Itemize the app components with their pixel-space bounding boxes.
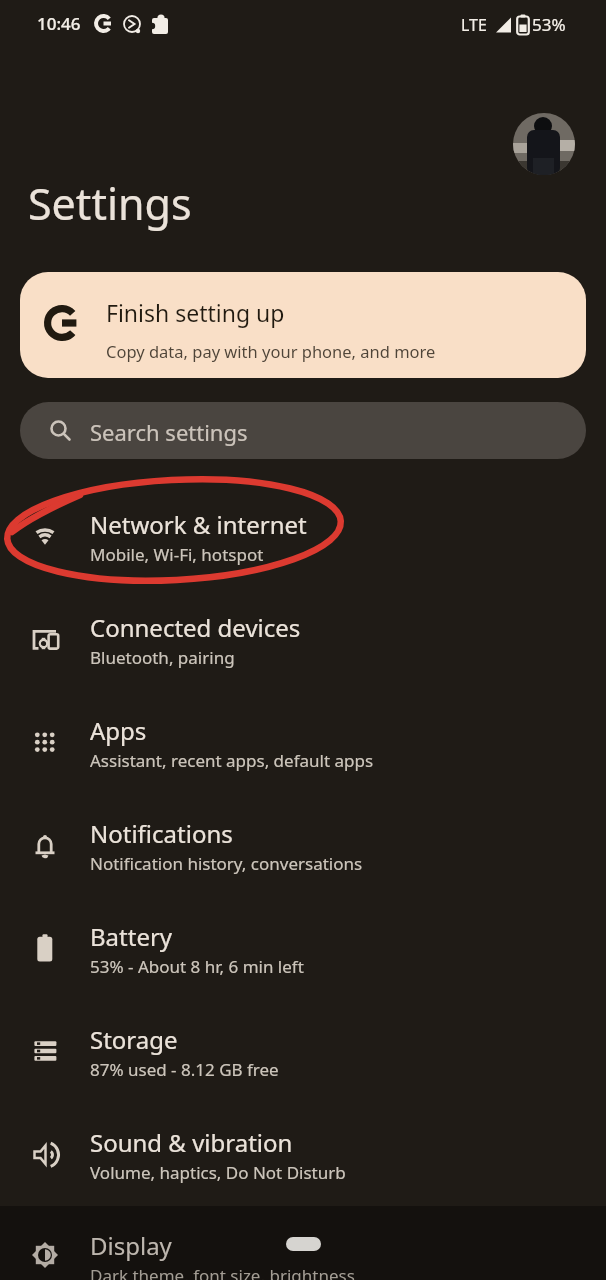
button[interactable]: Sound & vibration	[0, 1104, 606, 1207]
staticText: 53%	[532, 13, 566, 36]
staticText: Battery	[90, 920, 173, 953]
staticText: Search settings	[90, 417, 248, 447]
staticText: 53% - About 8 hr, 6 min left	[90, 955, 304, 978]
button[interactable]: Network & internet	[0, 486, 606, 589]
staticText: Sound & vibration	[90, 1126, 293, 1159]
button[interactable]: Battery	[0, 898, 606, 1001]
staticText: Volume, haptics, Do Not Disturb	[90, 1161, 346, 1184]
staticText: Dark theme, font size, brightness	[90, 1264, 355, 1280]
staticText: Bluetooth, pairing	[90, 646, 235, 669]
staticText: Network & internet	[90, 508, 307, 541]
button[interactable]: Notifications	[0, 795, 606, 898]
button[interactable]: Connected devices	[0, 589, 606, 692]
button[interactable]: Storage	[0, 1001, 606, 1104]
staticText: Assistant, recent apps, default apps	[90, 749, 374, 772]
staticText: Notification history, conversations	[90, 852, 363, 875]
staticText: Connected devices	[90, 611, 301, 644]
staticText: Storage	[90, 1023, 178, 1056]
staticText: Finish setting up	[106, 297, 285, 328]
staticText: 87% used - 8.12 GB free	[90, 1058, 279, 1081]
button[interactable]	[513, 113, 575, 175]
staticText: Notifications	[90, 817, 233, 850]
staticText: Mobile, Wi-Fi, hotspot	[90, 543, 264, 566]
staticText: LTE	[461, 14, 487, 36]
button[interactable]: Apps	[0, 692, 606, 795]
button[interactable]: Finish setting up	[20, 272, 586, 378]
staticText: Settings	[28, 174, 192, 233]
staticText: Display	[90, 1229, 172, 1262]
staticText: Apps	[90, 714, 147, 747]
staticText: 10:46	[37, 12, 81, 35]
button[interactable]: Search settings	[20, 402, 586, 459]
button[interactable]: Display	[0, 1207, 606, 1280]
staticText: Copy data, pay with your phone, and more	[106, 340, 436, 362]
